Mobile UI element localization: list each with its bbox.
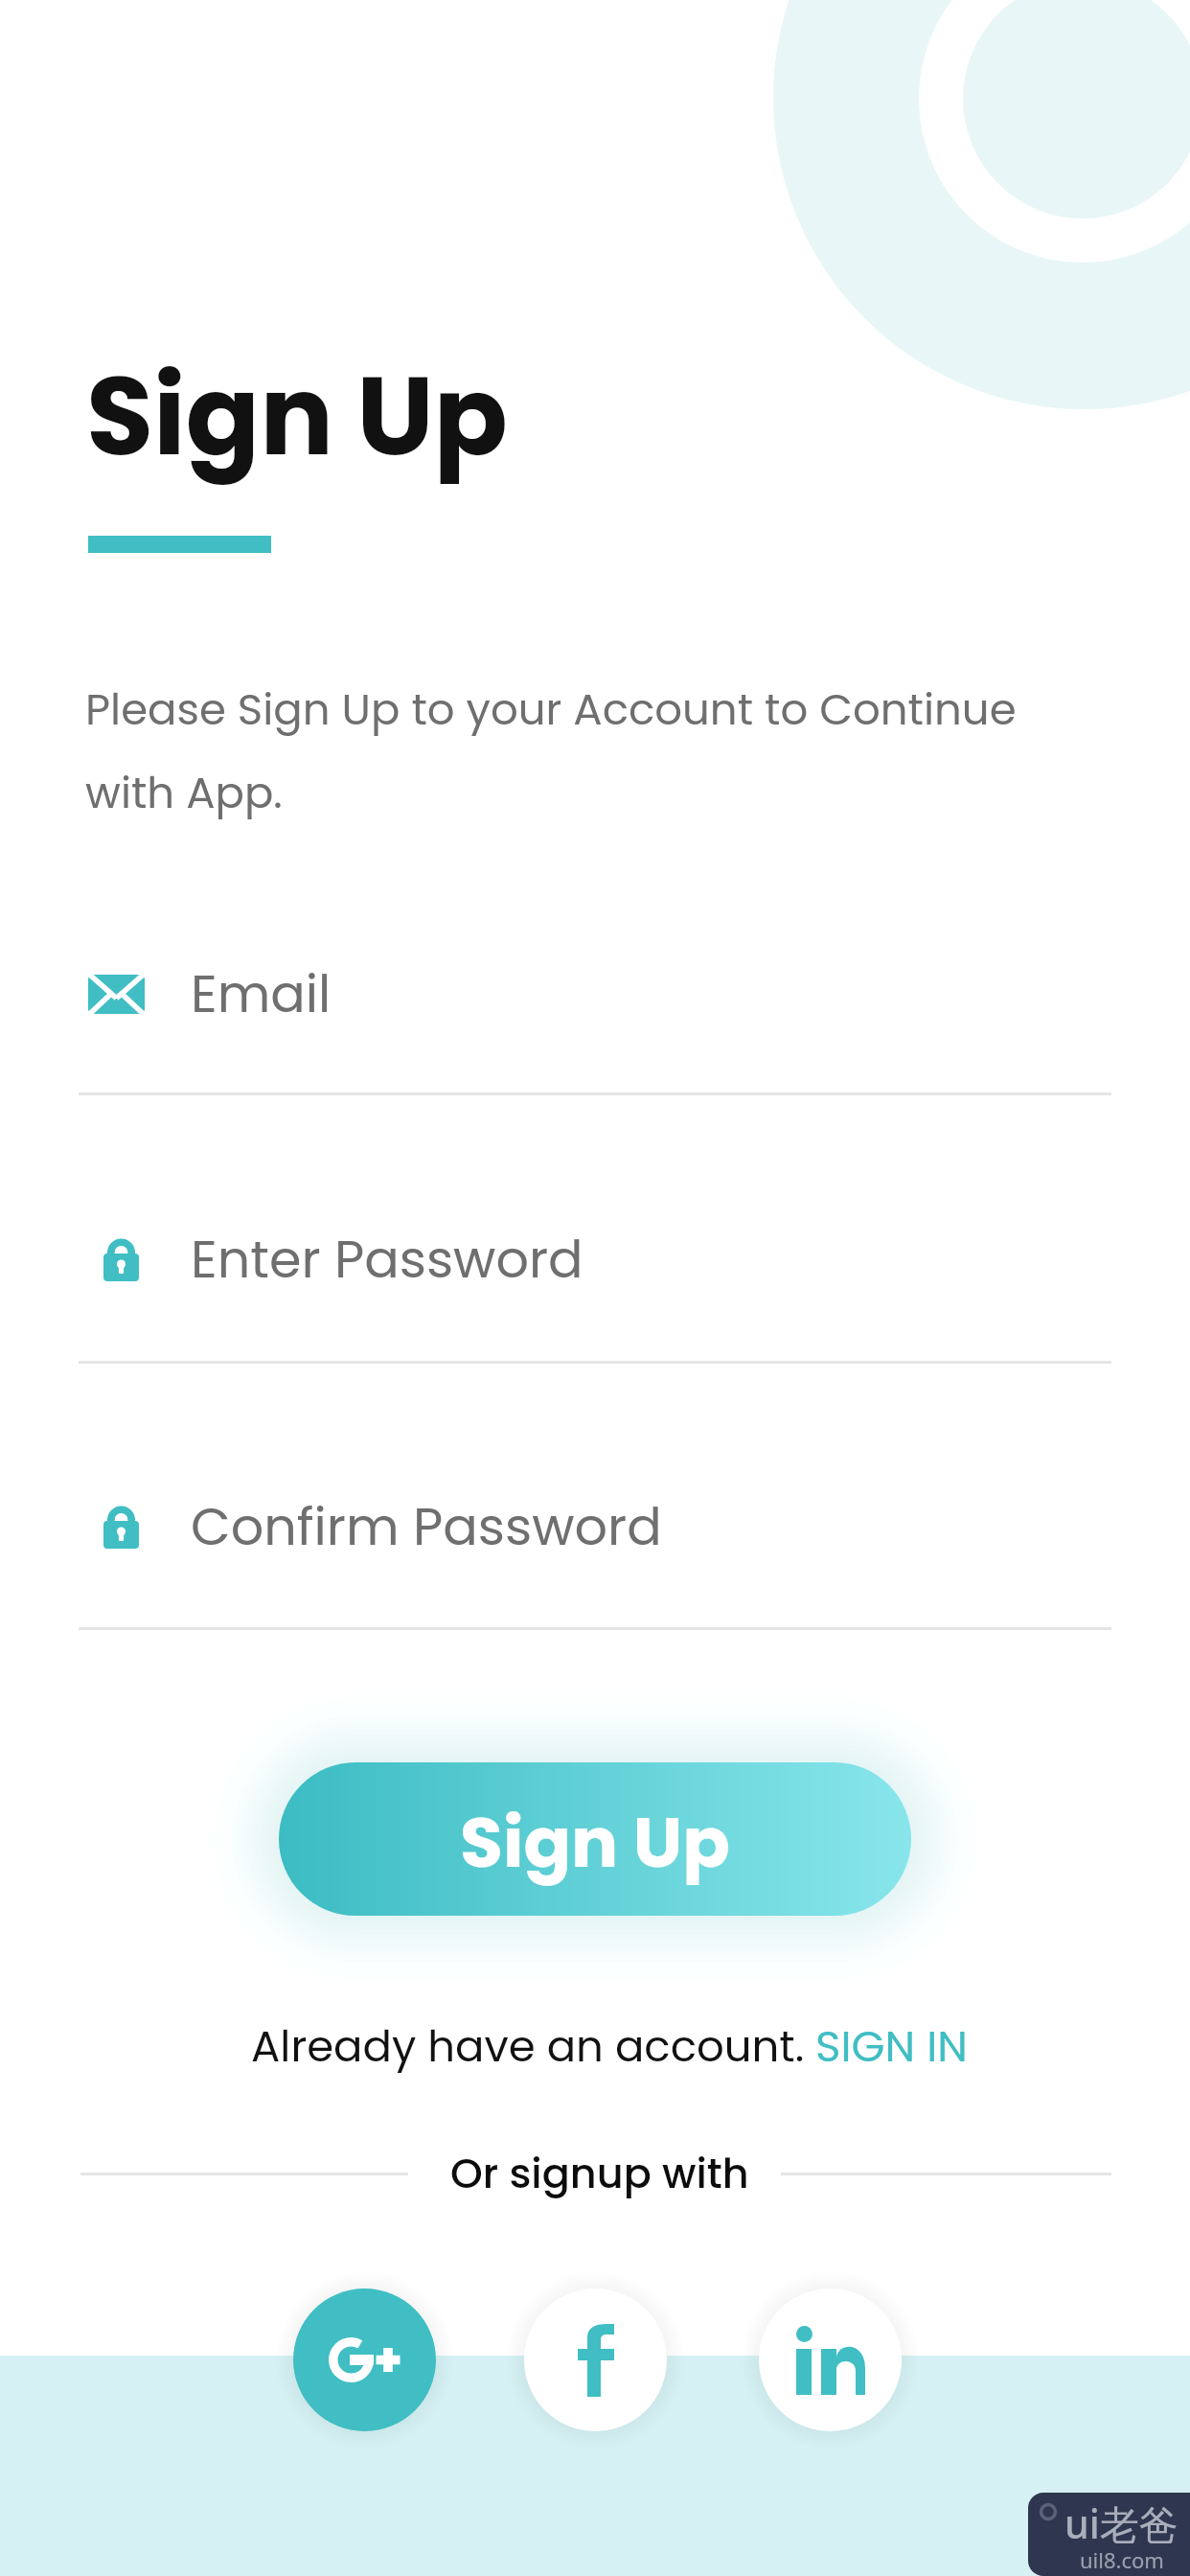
staticText: Confirm Password (191, 1490, 662, 1563)
staticText: SIGN IN (815, 2016, 968, 2077)
staticText: Or signup with (450, 2145, 749, 2202)
staticText: uil8.com (1080, 2545, 1164, 2574)
button[interactable]: Sign up with LinkedIn (759, 2288, 902, 2431)
staticText: Already have an account. (251, 2016, 816, 2077)
button[interactable]: Sign up with Google Plus (293, 2288, 436, 2431)
staticText: Sign Up (460, 1793, 730, 1891)
button[interactable]: Sign up with Facebook (524, 2288, 667, 2431)
button[interactable]: Sign Up (279, 1762, 911, 1916)
staticText: Please Sign Up to your Account to Contin… (85, 679, 1017, 740)
staticText: Sign Up (86, 339, 508, 493)
staticText: Enter Password (191, 1223, 584, 1296)
staticText: Email (191, 957, 332, 1030)
button[interactable] (0, 910, 1190, 1095)
button[interactable] (0, 1445, 1190, 1630)
staticText: ui老爸 (1064, 2496, 1179, 2550)
staticText: with App. (85, 763, 283, 823)
button[interactable] (0, 1179, 1190, 1364)
button[interactable] (230, 2005, 987, 2072)
